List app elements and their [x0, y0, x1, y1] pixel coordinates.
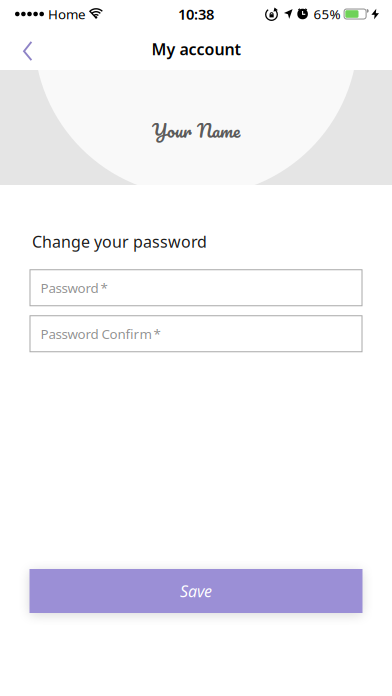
- button[interactable]: Password Confirm *: [29, 315, 362, 352]
- button[interactable]: Save: [29, 569, 362, 613]
- button[interactable]: Back: [0, 30, 46, 72]
- staticText: My account: [151, 38, 240, 60]
- staticText: Password Confirm *: [40, 325, 160, 343]
- staticText: 10:38: [178, 4, 214, 24]
- staticText: 65%: [314, 5, 341, 23]
- button[interactable]: Password *: [29, 269, 362, 306]
- staticText: Change your password: [32, 231, 207, 252]
- staticText: Save: [180, 580, 212, 602]
- staticText: Home: [48, 5, 86, 23]
- staticText: Password *: [40, 279, 107, 297]
- staticText: Your Name: [152, 115, 240, 146]
